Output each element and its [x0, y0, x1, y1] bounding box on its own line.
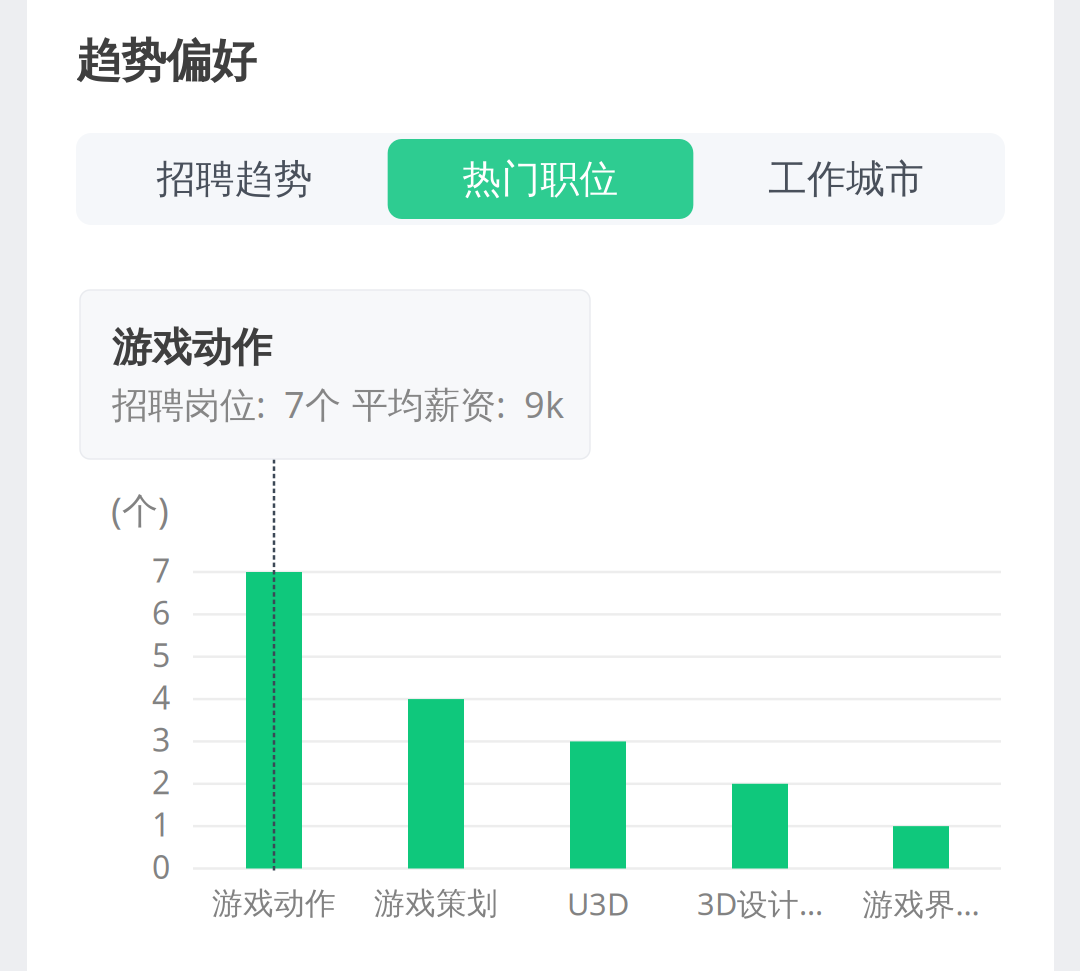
- staticText: 游戏界...: [862, 883, 979, 924]
- button[interactable]: 热门职位: [388, 139, 693, 219]
- staticText: U3D: [567, 883, 629, 924]
- staticText: 招聘岗位: 7个 平均薪资: 9k: [112, 380, 564, 428]
- staticText: 游戏策划: [374, 885, 498, 922]
- staticText: 招聘趋势: [157, 155, 313, 203]
- staticText: 游戏动作: [112, 323, 272, 372]
- staticText: 工作城市: [768, 155, 924, 203]
- staticText: 3: [152, 718, 170, 761]
- staticText: 2: [152, 760, 170, 803]
- staticText: 7: [152, 549, 170, 591]
- staticText: 4: [152, 676, 170, 718]
- button[interactable]: 工作城市: [693, 139, 999, 219]
- staticText: 0: [152, 845, 170, 888]
- staticText: 3D设计...: [697, 883, 823, 924]
- staticText: 6: [152, 591, 170, 634]
- staticText: 游戏动作: [212, 885, 336, 922]
- staticText: 5: [152, 633, 170, 676]
- staticText: 热门职位: [462, 155, 618, 203]
- staticText: 趋势偏好: [76, 33, 256, 89]
- staticText: 1: [152, 803, 170, 845]
- button[interactable]: 招聘趋势: [82, 139, 388, 219]
- staticText: (个): [111, 486, 169, 534]
